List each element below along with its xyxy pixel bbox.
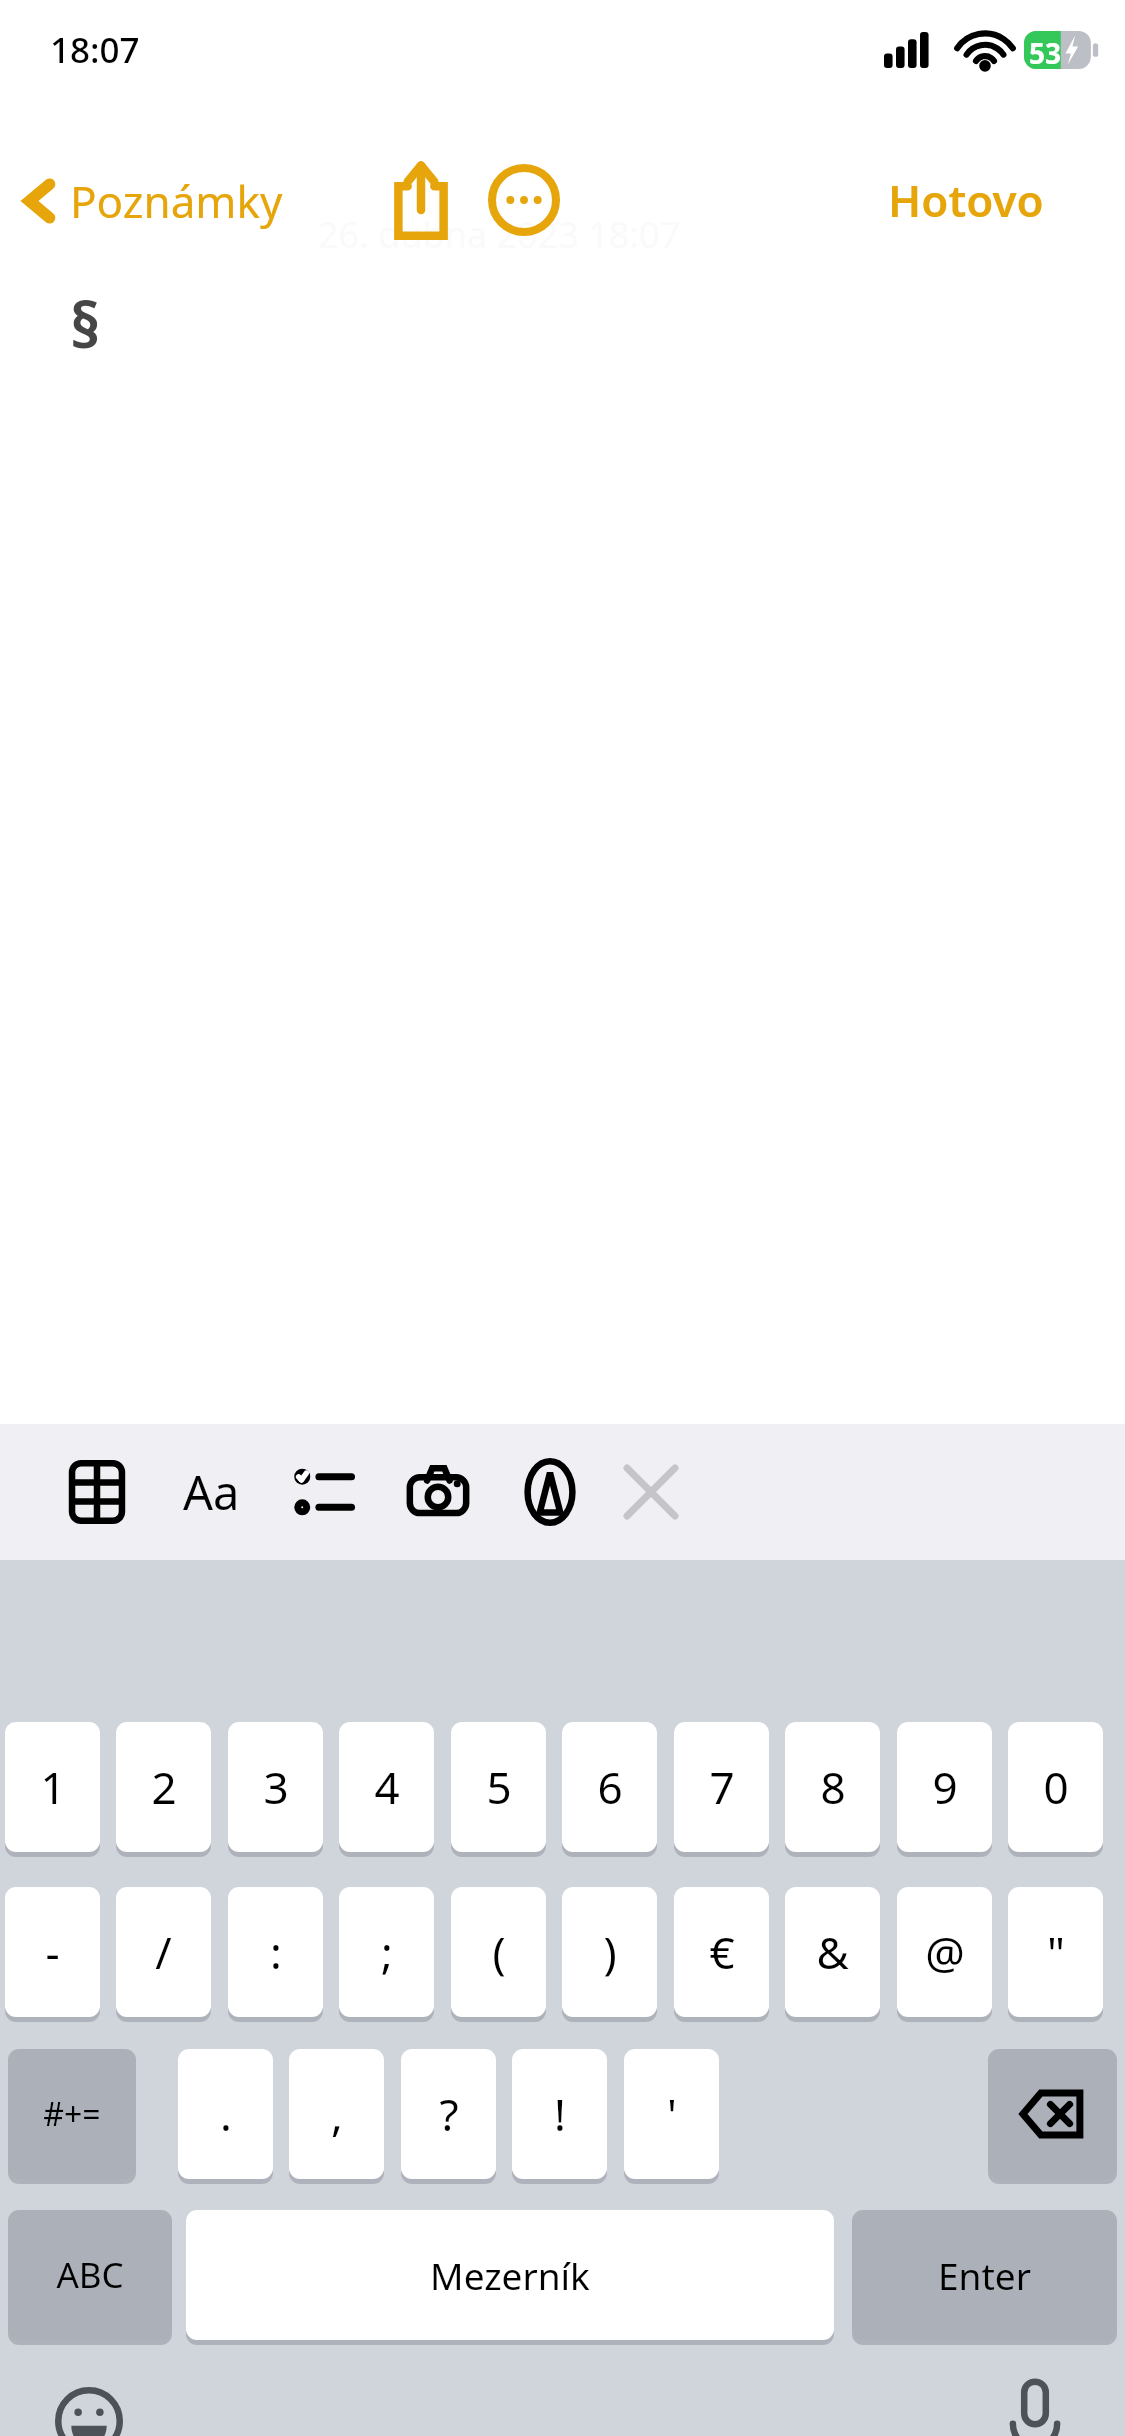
button[interactable]: 8 [785,1722,880,1857]
staticText: 3 [263,1757,289,1817]
button[interactable]: & [785,1887,880,2022]
button[interactable]: € [674,1887,769,2022]
staticText: Poznámky [70,171,283,231]
staticText: ! [554,2084,566,2144]
button[interactable]: 9 [897,1722,992,1857]
button[interactable]: 4 [339,1722,434,1857]
button[interactable]: 7 [674,1722,769,1857]
button[interactable]: 0 [1008,1722,1103,1857]
staticText: 53 [1029,34,1062,72]
button[interactable]: 3 [228,1722,323,1857]
staticText: 9 [932,1757,958,1817]
button[interactable]: ) [562,1887,657,2022]
staticText: ? [439,2084,459,2144]
staticText: #+= [43,2092,101,2136]
staticText: 0 [1043,1757,1069,1817]
button[interactable]: - [5,1887,100,2022]
staticText: / [155,1922,172,1982]
button[interactable]: 2 [116,1722,211,1857]
button[interactable]: 6 [562,1722,657,1857]
button[interactable]: Aa [161,1447,261,1537]
staticText: ; [381,1922,393,1982]
staticText: , [331,2084,343,2144]
button[interactable]: ( [451,1887,546,2022]
button[interactable]: ? [401,2049,496,2184]
staticText: 4 [374,1757,400,1817]
staticText: € [709,1922,735,1982]
button[interactable]: 5 [451,1722,546,1857]
staticText: ABC [56,2251,124,2299]
staticText: @ [925,1922,965,1982]
staticText: . [220,2084,232,2144]
button[interactable]: Enter [852,2210,1117,2345]
staticText: ) [603,1922,617,1982]
button[interactable]: Table [52,1447,142,1537]
staticText: & [816,1922,849,1982]
button[interactable]: Backspace [988,2049,1117,2184]
button[interactable]: More options [476,152,572,248]
staticText: Hotovo [888,170,1044,230]
staticText: : [270,1922,282,1982]
button[interactable]: #+= [8,2049,136,2184]
button[interactable]: Mezerník [186,2210,834,2345]
button[interactable]: Checklist [279,1447,369,1537]
staticText: 18:07 [50,26,140,74]
staticText: 1 [40,1757,66,1817]
staticText: - [45,1922,60,1982]
button[interactable]: " [1008,1887,1103,2022]
staticText: 8 [820,1757,846,1817]
button[interactable]: Markup [505,1447,595,1537]
button[interactable]: ' [624,2049,719,2184]
button[interactable]: ! [512,2049,607,2184]
button[interactable]: 1 [5,1722,100,1857]
staticText: 2 [151,1757,177,1817]
staticText: 7 [709,1757,735,1817]
staticText: " [1047,1922,1065,1982]
button[interactable]: Camera [393,1447,483,1537]
button[interactable]: Emoji [36,2368,142,2436]
staticText: 26. dubna 2023 18:07 [318,210,681,259]
staticText: Enter [938,2250,1031,2300]
button[interactable]: Share [373,152,469,248]
button[interactable]: @ [897,1887,992,2022]
button[interactable]: , [289,2049,384,2184]
staticText: 6 [597,1757,623,1817]
button[interactable]: ABC [8,2210,172,2345]
button[interactable]: ; [339,1887,434,2022]
button[interactable]: Dictation [982,2368,1088,2436]
button[interactable]: Poznámky [16,160,283,242]
button[interactable]: : [228,1887,323,2022]
staticText: Aa [183,1460,240,1524]
staticText: Mezerník [430,2250,590,2300]
button[interactable]: . [178,2049,273,2184]
button[interactable]: / [116,1887,211,2022]
staticText: 5 [486,1757,512,1817]
button[interactable]: Hide keyboard [606,1447,696,1537]
staticText: ' [667,2084,677,2144]
staticText: ( [492,1922,506,1982]
button[interactable]: Hotovo [888,152,1044,248]
staticText: § [70,282,101,366]
